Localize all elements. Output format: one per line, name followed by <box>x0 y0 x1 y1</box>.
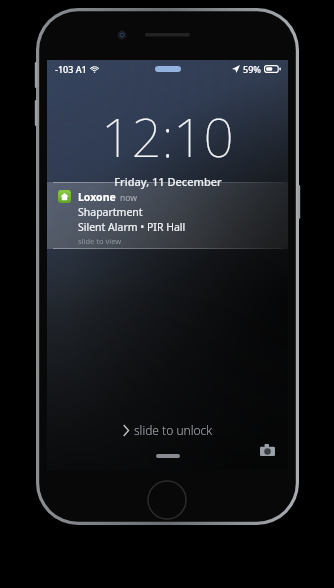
button[interactable]: Camera <box>253 436 281 464</box>
staticText: Friday, 11 December <box>114 174 222 189</box>
staticText: 59% <box>243 63 261 75</box>
staticText: Shapartment <box>78 205 143 219</box>
staticText: 12:10 <box>101 100 234 172</box>
staticText: Loxone <box>78 190 116 204</box>
button[interactable]: Loxone <box>47 182 288 249</box>
staticText: slide to view <box>78 236 122 246</box>
staticText: now <box>120 192 137 204</box>
staticText: Silent Alarm • PIR Hall <box>78 220 186 234</box>
button[interactable]: slide to unlock <box>47 420 288 440</box>
staticText: slide to unlock <box>134 422 213 438</box>
staticText: -103 A1 <box>55 63 87 75</box>
